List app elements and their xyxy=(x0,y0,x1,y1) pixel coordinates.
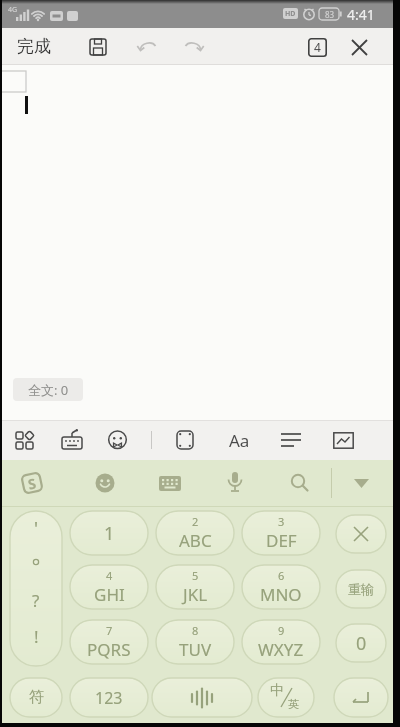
button[interactable] xyxy=(334,678,388,717)
button[interactable]: Aa xyxy=(224,426,254,454)
staticText: Aa xyxy=(229,429,250,452)
staticText: ' xyxy=(34,516,39,541)
button[interactable]: 4 xyxy=(307,37,327,57)
button[interactable] xyxy=(175,429,195,451)
button[interactable]: 重输 xyxy=(336,570,386,608)
button[interactable] xyxy=(288,472,312,494)
staticText: 中 xyxy=(270,682,284,700)
button[interactable]: 中 xyxy=(258,678,314,717)
button[interactable] xyxy=(182,37,204,57)
button[interactable] xyxy=(152,678,252,717)
button[interactable]: 5 xyxy=(156,565,234,609)
staticText: 3 xyxy=(278,514,285,529)
staticText: GHI xyxy=(94,583,125,606)
button[interactable]: 9 xyxy=(242,620,320,664)
button[interactable] xyxy=(349,37,369,57)
button[interactable] xyxy=(13,429,35,451)
button[interactable] xyxy=(10,511,62,666)
staticText: 4 xyxy=(106,568,113,583)
staticText: 123 xyxy=(95,687,123,709)
staticText: ? xyxy=(32,589,40,612)
button[interactable] xyxy=(336,515,386,553)
staticText: 4:41 xyxy=(347,5,375,24)
button[interactable]: 8 xyxy=(156,620,234,664)
staticText: 4G xyxy=(8,5,18,15)
button[interactable] xyxy=(137,37,159,57)
button[interactable] xyxy=(60,429,84,451)
staticText: 英 xyxy=(288,697,299,711)
button[interactable]: 0 xyxy=(336,624,386,662)
button[interactable] xyxy=(88,37,108,57)
button[interactable]: 2 xyxy=(156,511,234,555)
button[interactable] xyxy=(280,429,303,451)
staticText: MNO xyxy=(260,583,302,606)
button[interactable]: 3 xyxy=(242,511,320,555)
staticText: 0 xyxy=(356,631,367,656)
staticText: HD xyxy=(285,9,296,19)
staticText: JKL xyxy=(183,583,208,606)
button[interactable] xyxy=(224,470,246,496)
button[interactable] xyxy=(94,472,116,494)
button[interactable] xyxy=(106,429,128,451)
staticText: PQRS xyxy=(87,638,131,661)
staticText: S xyxy=(26,473,38,494)
button[interactable]: 1 xyxy=(70,511,148,555)
button[interactable]: 4 xyxy=(70,565,148,609)
staticText: DEF xyxy=(266,529,297,552)
button[interactable] xyxy=(332,429,355,451)
button[interactable]: 符 xyxy=(10,678,62,717)
staticText: 1 xyxy=(104,521,115,546)
staticText: 4 xyxy=(314,39,321,55)
staticText: 5 xyxy=(192,568,199,583)
staticText: 7 xyxy=(106,623,113,638)
button[interactable]: 123 xyxy=(70,678,148,717)
staticText: ABC xyxy=(179,529,212,552)
staticText: 完成 xyxy=(17,36,51,57)
staticText: 符 xyxy=(29,688,44,707)
staticText: 9 xyxy=(278,623,285,638)
button[interactable]: 完成 xyxy=(8,28,60,65)
button[interactable]: 6 xyxy=(242,565,320,609)
staticText: 8 xyxy=(192,623,199,638)
staticText: WXYZ xyxy=(258,638,304,661)
staticText: 83 xyxy=(325,9,335,20)
staticText: ! xyxy=(34,625,39,648)
staticText: 全文: 0 xyxy=(28,381,69,399)
staticText: 6 xyxy=(278,568,285,583)
button[interactable]: 7 xyxy=(70,620,148,664)
staticText: TUV xyxy=(179,638,212,661)
staticText: 重输 xyxy=(348,581,374,597)
button[interactable] xyxy=(158,473,182,493)
button[interactable]: S xyxy=(20,470,44,496)
button[interactable] xyxy=(349,476,373,490)
staticText: 2 xyxy=(192,514,199,529)
